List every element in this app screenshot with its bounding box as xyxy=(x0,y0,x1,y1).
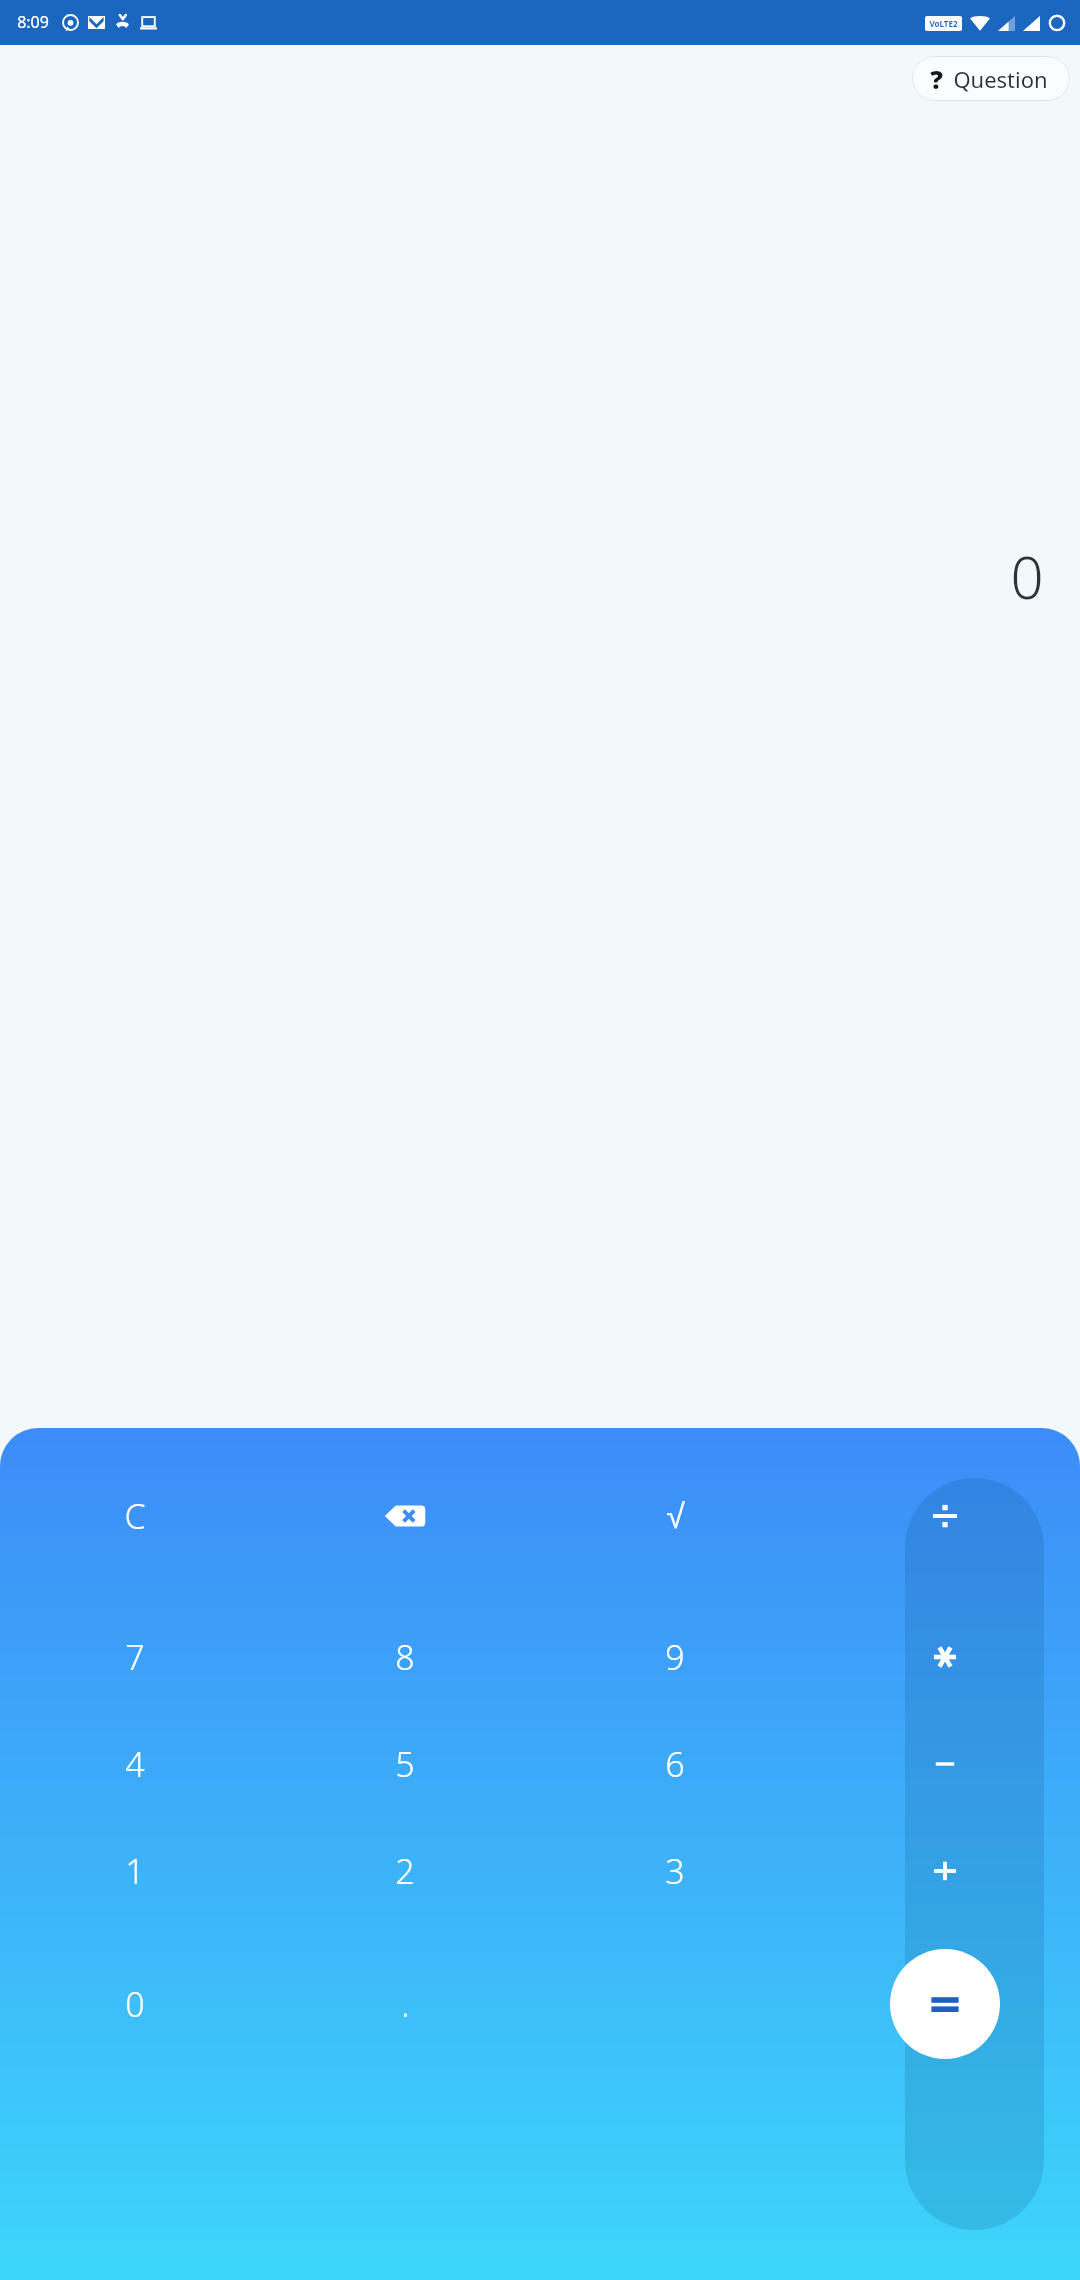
staticText: . xyxy=(401,1981,410,2027)
button[interactable]: C xyxy=(0,1428,270,1603)
staticText: 1 xyxy=(125,1848,145,1894)
staticText: 9 xyxy=(665,1634,685,1680)
button[interactable]: 0 xyxy=(0,1924,270,2084)
staticText: 7 xyxy=(125,1634,145,1680)
button[interactable]: Multiply xyxy=(810,1603,1080,1710)
button[interactable]: 7 xyxy=(0,1603,270,1710)
staticText: 8:09 xyxy=(17,11,49,33)
button[interactable]: 8 xyxy=(270,1603,540,1710)
button[interactable]: Minus xyxy=(810,1710,1080,1817)
staticText: √ xyxy=(666,1497,685,1535)
button[interactable]: Divide xyxy=(810,1428,1080,1603)
button[interactable]: 2 xyxy=(270,1817,540,1924)
button[interactable]: 1 xyxy=(0,1817,270,1924)
button[interactable]: 9 xyxy=(540,1603,810,1710)
button[interactable]: 3 xyxy=(540,1817,810,1924)
button[interactable]: Plus xyxy=(810,1817,1080,1924)
button[interactable]: 6 xyxy=(540,1710,810,1817)
staticText: ? xyxy=(930,62,943,96)
staticText: 8 xyxy=(395,1634,415,1680)
button[interactable]: 5 xyxy=(270,1710,540,1817)
staticText: C xyxy=(124,1493,146,1539)
staticText: 2 xyxy=(395,1848,415,1894)
staticText: 4 xyxy=(125,1741,145,1787)
staticText: 0 xyxy=(1010,537,1044,616)
staticText: Question xyxy=(953,64,1048,94)
staticText: 0 xyxy=(125,1981,145,2027)
button[interactable]: Backspace xyxy=(270,1428,540,1603)
button[interactable]: . xyxy=(270,1924,540,2084)
staticText: 3 xyxy=(665,1848,685,1894)
staticText: 5 xyxy=(395,1741,415,1787)
staticText: VoLTE2 xyxy=(929,18,958,29)
button[interactable]: Equals xyxy=(890,1949,1000,2059)
button[interactable]: ? xyxy=(912,56,1070,101)
button[interactable]: 4 xyxy=(0,1710,270,1817)
staticText: 6 xyxy=(665,1741,685,1787)
button[interactable]: √ xyxy=(540,1428,810,1603)
